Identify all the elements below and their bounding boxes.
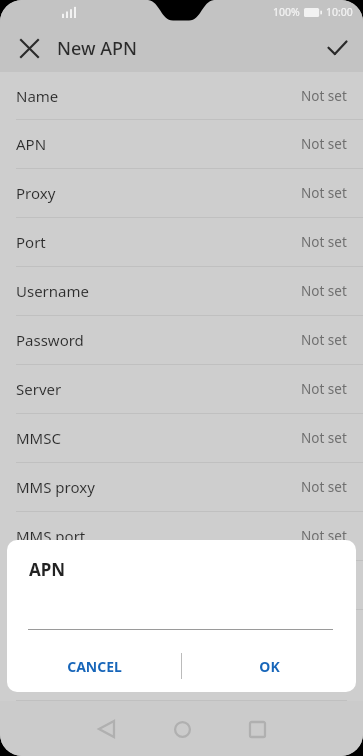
- staticText: Not set: [301, 429, 347, 447]
- staticText: MMSC: [16, 428, 61, 448]
- staticText: New APN: [57, 36, 137, 61]
- button[interactable]: Name: [0, 72, 363, 119]
- staticText: Not set: [301, 625, 347, 643]
- button[interactable]: CANCEL: [7, 640, 181, 692]
- button[interactable]: Recents: [237, 709, 277, 749]
- button[interactable]: Password: [0, 316, 363, 364]
- staticText: MCC: [16, 575, 49, 595]
- staticText: 100%: [273, 5, 300, 19]
- staticText: Not set: [301, 233, 347, 251]
- button[interactable]: Save: [317, 28, 357, 68]
- button[interactable]: Close: [9, 28, 49, 68]
- staticText: Not set: [301, 135, 347, 153]
- button[interactable]: APN: [0, 120, 363, 168]
- staticText: 10:00: [326, 5, 353, 19]
- staticText: Name: [16, 86, 59, 106]
- button[interactable]: MCC: [0, 561, 363, 609]
- button[interactable]: MMSC: [0, 414, 363, 462]
- staticText: Username: [16, 281, 89, 301]
- staticText: Not set: [301, 184, 347, 202]
- staticText: CANCEL: [67, 657, 122, 676]
- staticText: Port: [16, 232, 46, 252]
- button[interactable]: Proxy: [0, 169, 363, 217]
- staticText: Proxy: [16, 183, 56, 203]
- staticText: Password: [16, 330, 84, 350]
- staticText: MMS port: [16, 526, 86, 546]
- staticText: OK: [259, 657, 280, 676]
- staticText: Server: [16, 379, 62, 399]
- staticText: Not set: [301, 331, 347, 349]
- staticText: Not set: [301, 282, 347, 300]
- button[interactable]: Home: [162, 709, 202, 749]
- staticText: APN: [16, 134, 47, 154]
- button[interactable]: Username: [0, 267, 363, 315]
- button[interactable]: MMS proxy: [0, 463, 363, 511]
- staticText: MMS proxy: [16, 477, 95, 497]
- staticText: Not set: [301, 380, 347, 398]
- staticText: Not set: [301, 527, 347, 545]
- button[interactable]: MNC: [0, 610, 363, 658]
- staticText: Not set: [301, 478, 347, 496]
- staticText: APN: [29, 558, 66, 581]
- button[interactable]: Back: [86, 709, 126, 749]
- staticText: Not set: [301, 87, 347, 105]
- staticText: MNC: [16, 624, 51, 644]
- button[interactable]: MMS port: [0, 512, 363, 560]
- button[interactable]: Port: [0, 218, 363, 266]
- button[interactable]: OK: [182, 640, 356, 692]
- button[interactable]: Server: [0, 365, 363, 413]
